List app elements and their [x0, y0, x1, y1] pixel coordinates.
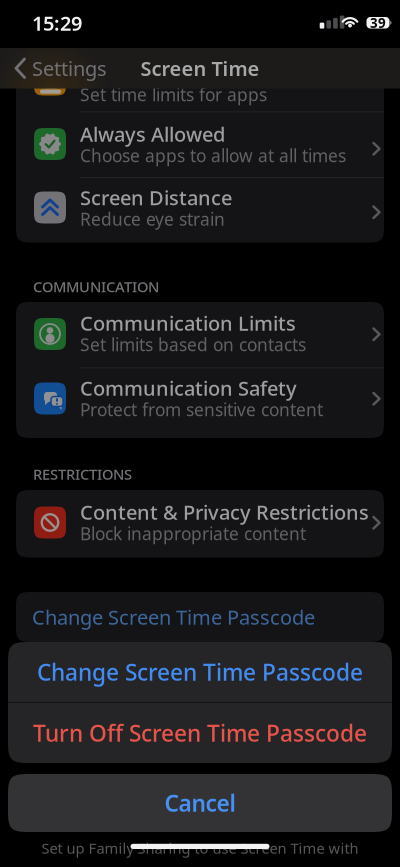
button[interactable]: Communication Safety — [16, 367, 384, 438]
button[interactable]: Content & Privacy Restrictions — [16, 490, 384, 557]
staticText: Protect from sensitive content — [80, 398, 323, 421]
staticText: Content & Privacy Restrictions — [80, 499, 369, 525]
staticText: Change Screen Time Passcode — [32, 604, 315, 630]
staticText: Screen Distance — [80, 184, 232, 211]
staticText: Reduce eye strain — [80, 207, 225, 230]
staticText: Cancel — [164, 788, 235, 818]
staticText: Set time limits for apps — [80, 83, 267, 106]
button[interactable]: Set time limits for apps — [16, 48, 384, 111]
button[interactable]: Change Screen Time Passcode — [8, 642, 392, 702]
staticText: Block inappropriate content — [80, 522, 306, 545]
button[interactable]: Change Screen Time Passcode — [16, 592, 384, 642]
staticText: Always Allowed — [80, 121, 225, 147]
staticText: 15:29 — [32, 10, 82, 36]
staticText: COMMUNICATION — [33, 277, 159, 296]
button[interactable]: Turn Off Screen Time Passcode — [8, 703, 392, 763]
staticText: 39 — [370, 14, 386, 32]
staticText: Settings — [32, 55, 107, 82]
staticText: Change Screen Time Passcode — [37, 657, 363, 687]
staticText: Screen Time — [140, 55, 259, 82]
staticText: RESTRICTIONS — [33, 464, 132, 484]
staticText: Set up Family Sharing to use Screen Time… — [41, 838, 358, 858]
staticText: Communication Limits — [80, 310, 296, 336]
button[interactable]: Back — [14, 48, 104, 88]
button[interactable]: Cancel — [8, 774, 392, 832]
button[interactable]: Screen Distance — [16, 177, 384, 242]
button[interactable]: Communication Limits — [16, 302, 384, 367]
staticText: Communication Safety — [80, 375, 297, 401]
staticText: Turn Off Screen Time Passcode — [33, 718, 367, 748]
staticText: Set limits based on contacts — [80, 333, 306, 356]
button[interactable]: Always Allowed — [16, 111, 384, 177]
staticText: Choose apps to allow at all times — [80, 144, 346, 167]
